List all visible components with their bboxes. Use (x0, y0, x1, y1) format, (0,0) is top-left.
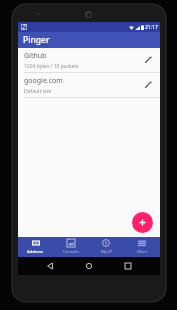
button[interactable]: Back (43, 259, 57, 273)
button[interactable]: Edit google.com (141, 78, 155, 92)
staticText: More (137, 249, 148, 255)
staticText: My IP (101, 249, 112, 255)
staticText: 21:17 (145, 24, 158, 31)
staticText: Default size (24, 88, 52, 95)
button[interactable]: Console (53, 237, 88, 257)
button[interactable]: Add (132, 212, 153, 233)
button[interactable]: Edit Github (141, 53, 155, 67)
staticText: google.com (24, 76, 63, 86)
button[interactable]: google.com (18, 73, 160, 97)
staticText: Pinger (23, 34, 50, 46)
button[interactable]: Home (82, 259, 96, 273)
staticText: Address (27, 249, 44, 255)
staticText: 1024 bytes / 10 packets (24, 63, 79, 70)
button[interactable]: Address (18, 237, 53, 257)
button[interactable]: Github (18, 48, 160, 72)
button[interactable]: My IP (88, 237, 124, 257)
button[interactable]: More (124, 237, 160, 257)
staticText: Console (63, 249, 79, 255)
staticText: Github (24, 51, 47, 61)
button[interactable]: Recent apps (121, 259, 135, 273)
